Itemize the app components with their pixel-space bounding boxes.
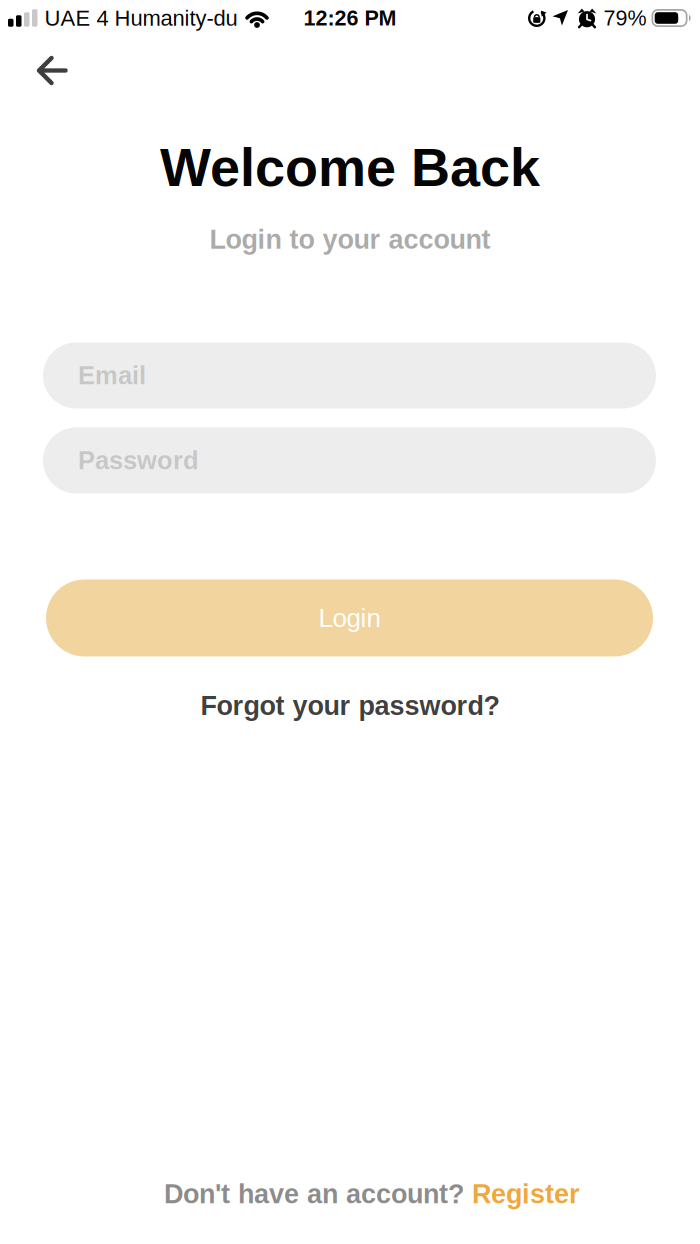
staticText: 79% xyxy=(603,6,646,30)
staticText: Forgot your password? xyxy=(200,690,499,721)
staticText: Register xyxy=(472,1179,580,1209)
staticText: Password xyxy=(78,446,199,475)
staticText: Welcome Back xyxy=(160,137,540,197)
staticText: Login to your account xyxy=(209,224,490,254)
staticText: 12:26 PM xyxy=(303,6,396,30)
button[interactable]: Forgot your password? xyxy=(200,690,499,721)
button[interactable]: Password xyxy=(0,427,700,493)
staticText: Login xyxy=(318,603,380,632)
button[interactable]: Back xyxy=(0,36,67,92)
staticText: Don't have an account? xyxy=(164,1179,464,1209)
button[interactable]: Don't have an account? xyxy=(164,1179,580,1209)
staticText: Email xyxy=(78,361,146,390)
button[interactable]: Email xyxy=(0,342,700,408)
button[interactable]: Login xyxy=(0,579,700,656)
staticText: UAE 4 Humanity-du xyxy=(44,6,237,30)
